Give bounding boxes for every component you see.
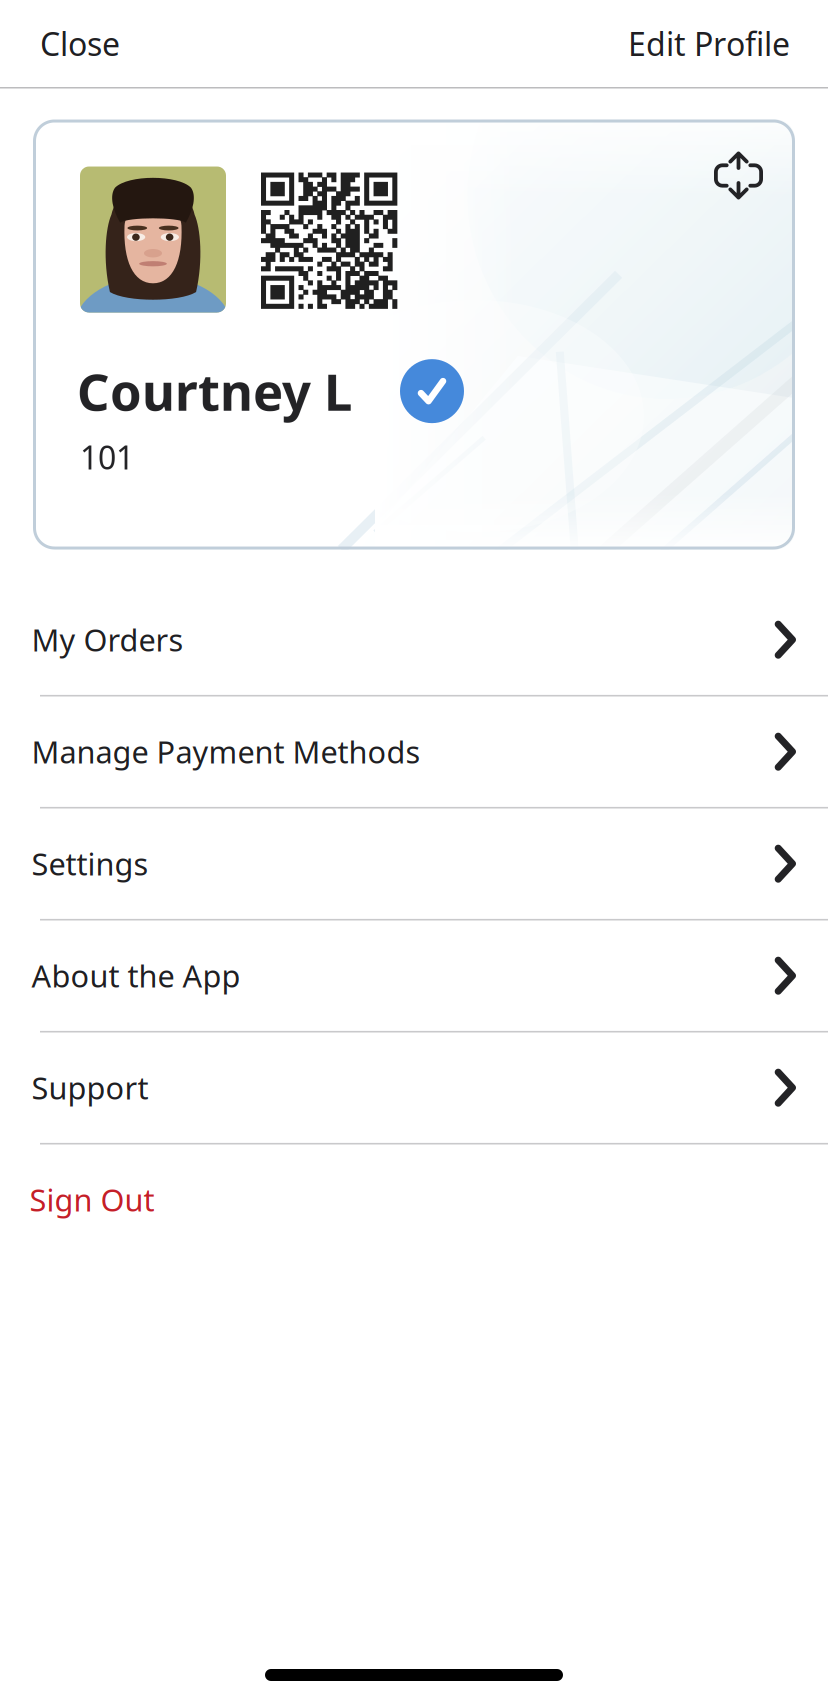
button[interactable]: Sign Out <box>0 1144 828 1255</box>
staticText: Close <box>40 22 120 65</box>
staticText: About the App <box>31 955 240 996</box>
staticText: Courtney L <box>77 357 352 425</box>
staticText: Edit Profile <box>628 22 790 65</box>
button[interactable]: Settings <box>0 808 828 919</box>
button[interactable]: Support <box>0 1032 828 1143</box>
button[interactable]: Edit Profile <box>604 0 828 87</box>
button[interactable]: Manage Payment Methods <box>0 696 828 807</box>
button[interactable]: Expand card <box>714 151 763 199</box>
button[interactable]: Close <box>0 0 144 87</box>
staticText: Sign Out <box>29 1179 154 1220</box>
button[interactable]: About the App <box>0 920 828 1031</box>
staticText: 101 <box>80 436 134 478</box>
staticText: Manage Payment Methods <box>31 731 420 772</box>
staticText: Support <box>31 1067 148 1108</box>
staticText: Settings <box>31 843 148 884</box>
staticText: My Orders <box>31 619 183 660</box>
button[interactable]: My Orders <box>0 584 828 695</box>
